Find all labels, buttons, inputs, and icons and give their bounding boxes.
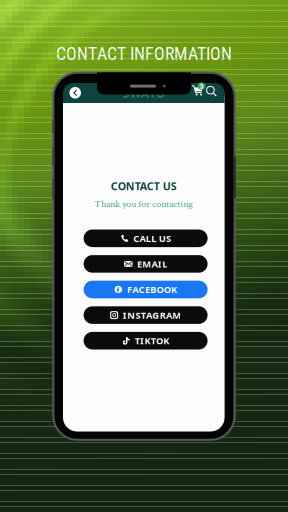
button[interactable]: INSTAGRAM (84, 306, 208, 324)
staticText: 3 (199, 82, 203, 91)
staticText: CALL US (133, 232, 171, 244)
staticText: Thank you for contacting (94, 197, 193, 211)
button[interactable]: Search (206, 86, 219, 99)
button[interactable]: FACEBOOK (84, 281, 208, 298)
button[interactable]: Cart (191, 84, 205, 98)
button[interactable]: EMAIL (84, 255, 208, 273)
button[interactable]: Back (68, 86, 82, 100)
staticText: INSTAGRAM (123, 309, 181, 321)
staticText: EMAIL (137, 258, 167, 270)
staticText: CONTACT INFORMATION (56, 44, 232, 64)
staticText: SWAYO (123, 85, 165, 101)
button[interactable]: CALL US (84, 229, 208, 247)
staticText: CONTACT US (111, 179, 177, 193)
staticText: TIKTOK (135, 334, 169, 347)
button[interactable]: TIKTOK (84, 332, 208, 349)
staticText: FACEBOOK (127, 283, 177, 296)
